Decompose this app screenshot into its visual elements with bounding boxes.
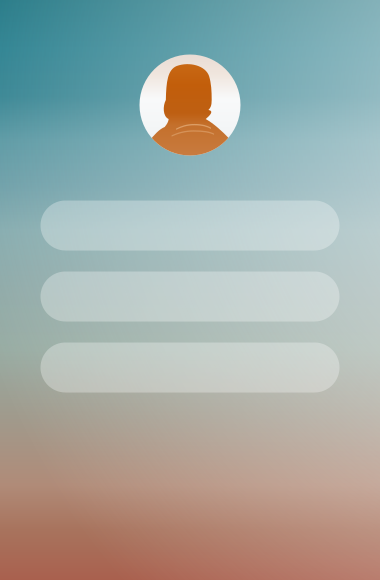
button[interactable]: [40, 271, 339, 321]
button[interactable]: [40, 342, 339, 392]
button[interactable]: [40, 200, 339, 250]
